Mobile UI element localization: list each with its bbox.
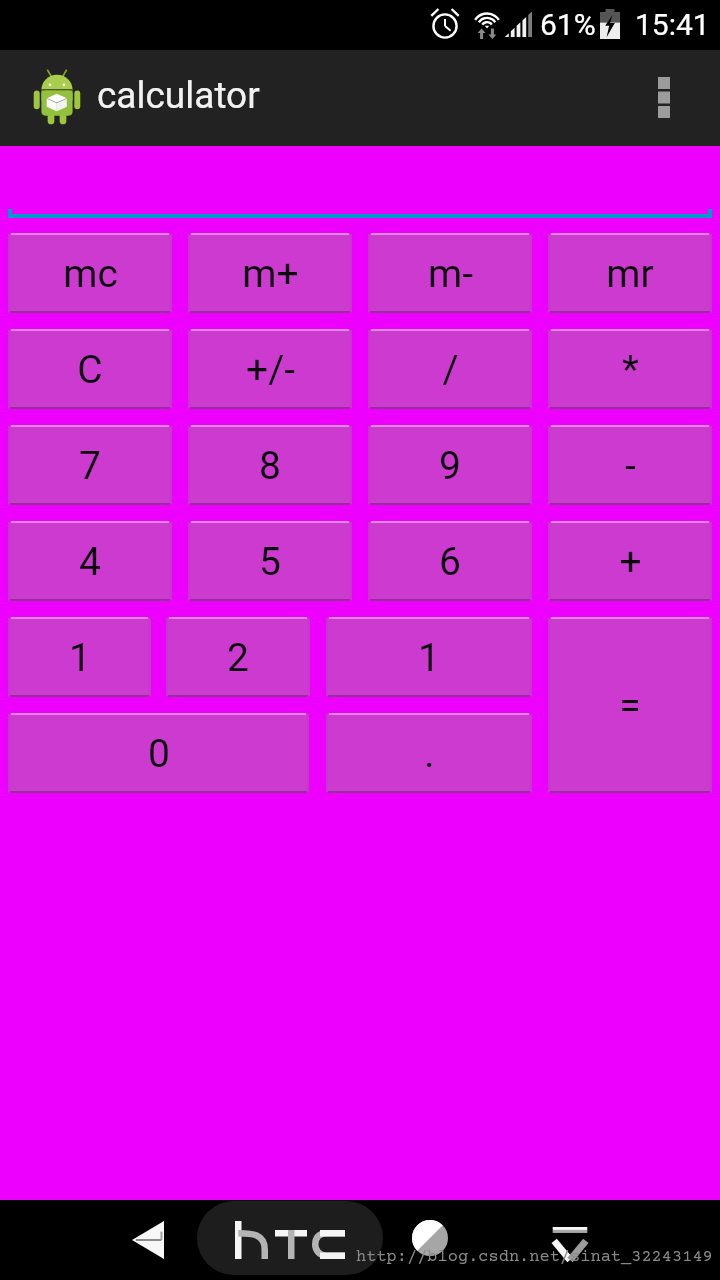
button[interactable]: 1 <box>8 617 151 697</box>
staticText: 9 <box>439 443 461 489</box>
button[interactable]: 1 <box>326 617 532 697</box>
staticText: / <box>442 347 459 393</box>
staticText: 1 <box>418 635 440 681</box>
button[interactable]: Hide keyboard <box>534 1203 606 1277</box>
button[interactable]: Recent apps <box>394 1203 466 1277</box>
button[interactable]: 2 <box>166 617 310 697</box>
button[interactable]: - <box>548 425 712 505</box>
button[interactable]: / <box>368 329 532 409</box>
button[interactable]: 8 <box>188 425 352 505</box>
staticText: calculator <box>97 74 260 117</box>
button[interactable]: Home <box>197 1201 383 1275</box>
button[interactable]: More options <box>624 50 716 146</box>
staticText: 5 <box>259 539 281 585</box>
staticText: C <box>77 347 103 393</box>
button[interactable]: 7 <box>8 425 172 505</box>
button[interactable]: 5 <box>188 521 352 601</box>
staticText: . <box>424 731 435 777</box>
button[interactable]: + <box>548 521 712 601</box>
staticText: 61% <box>540 7 596 42</box>
staticText: - <box>625 443 636 489</box>
staticText: m- <box>428 251 473 297</box>
staticText: = <box>619 683 641 729</box>
button[interactable]: +/- <box>188 329 352 409</box>
staticText: 4 <box>79 539 101 585</box>
staticText: 7 <box>79 443 101 489</box>
staticText: 8 <box>259 443 281 489</box>
staticText: m+ <box>242 251 299 297</box>
staticText: http://blog.csdn.net/sinat_32243149 <box>356 1248 713 1267</box>
button[interactable]: = <box>548 617 712 793</box>
staticText: 15:41 <box>635 7 710 42</box>
staticText: 2 <box>227 635 249 681</box>
staticText: * <box>622 347 639 393</box>
button[interactable]: Back <box>112 1203 184 1277</box>
button[interactable]: mr <box>548 233 712 313</box>
button[interactable]: 4 <box>8 521 172 601</box>
button[interactable]: 9 <box>368 425 532 505</box>
staticText: 0 <box>148 731 170 777</box>
staticText: +/- <box>246 347 295 393</box>
staticText: 6 <box>439 539 461 585</box>
staticText: mr <box>606 251 654 297</box>
button[interactable]: 0 <box>8 713 309 793</box>
button[interactable]: m+ <box>188 233 352 313</box>
button[interactable]: m- <box>368 233 532 313</box>
staticText: + <box>619 539 642 585</box>
button[interactable]: 6 <box>368 521 532 601</box>
staticText: mc <box>63 251 118 297</box>
button[interactable]: mc <box>8 233 172 313</box>
button[interactable]: C <box>8 329 172 409</box>
staticText: 1 <box>69 635 91 681</box>
button[interactable]: * <box>548 329 712 409</box>
button[interactable]: . <box>326 713 532 793</box>
